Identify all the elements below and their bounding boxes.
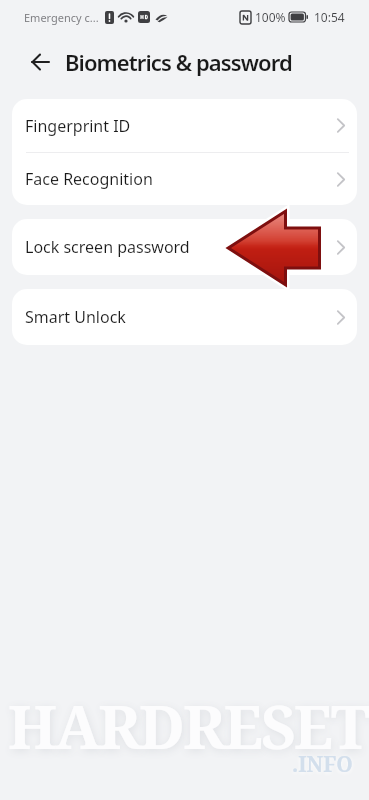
staticText: 100% — [255, 9, 286, 25]
button[interactable]: Lock screen password — [12, 219, 357, 275]
staticText: Smart Unlock — [25, 306, 126, 328]
staticText: Face Recognition — [25, 168, 153, 190]
staticText: HARDRESET — [8, 685, 369, 767]
button[interactable]: Face Recognition — [12, 153, 357, 205]
button[interactable]: Fingerprint ID — [12, 99, 357, 152]
staticText: Lock screen password — [25, 236, 190, 258]
staticText: Fingerprint ID — [25, 115, 131, 137]
staticText: Emergency c... — [24, 10, 99, 25]
staticText: 10:54 — [314, 9, 345, 25]
staticText: Biometrics & password — [65, 47, 292, 77]
button[interactable]: Smart Unlock — [12, 289, 357, 345]
staticText: .INFO — [292, 750, 353, 779]
button[interactable] — [28, 50, 52, 74]
